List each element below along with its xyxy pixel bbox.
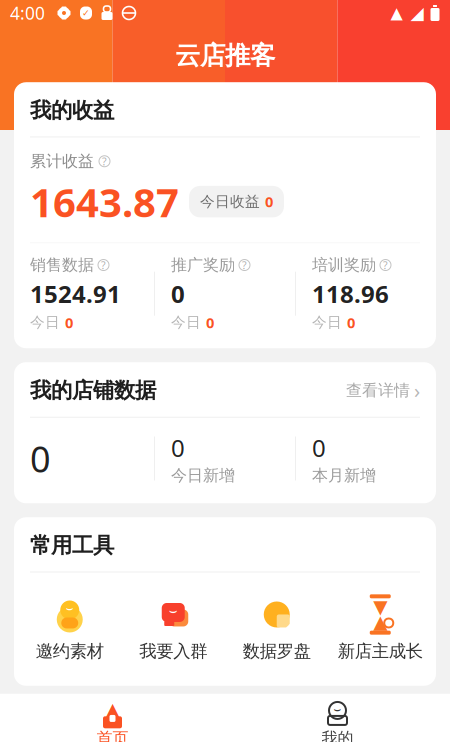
- staticText: 0: [265, 192, 273, 211]
- staticText: 0: [347, 313, 355, 332]
- staticText: 今日收益: [200, 193, 260, 211]
- staticText: 1643.87: [30, 175, 179, 228]
- staticText: 4:00: [10, 1, 45, 24]
- staticText: 云店推客: [175, 40, 275, 71]
- button[interactable]: ⌣: [18, 594, 121, 666]
- staticText: 我的收益: [30, 97, 114, 123]
- staticText: 今日: [312, 313, 342, 331]
- staticText: 今日: [30, 313, 60, 331]
- staticText: ⌣: [66, 603, 74, 614]
- button[interactable]: 数据罗盘: [225, 594, 328, 666]
- staticText: ?: [242, 258, 247, 272]
- staticText: 0: [171, 278, 185, 310]
- button[interactable]: ▼: [328, 594, 432, 666]
- staticText: 今日: [171, 313, 201, 331]
- staticText: ▼: [373, 596, 387, 617]
- staticText: ?: [383, 258, 388, 272]
- staticText: ▲: [105, 699, 120, 721]
- staticText: 0: [65, 313, 73, 332]
- staticText: ›: [414, 377, 420, 404]
- staticText: 本月新增: [312, 466, 376, 485]
- staticText: 我的: [321, 728, 353, 742]
- staticText: 0: [206, 313, 214, 332]
- staticText: 销售数据: [30, 255, 94, 275]
- staticText: ▲: [373, 611, 387, 633]
- staticText: 推广奖励: [171, 255, 235, 275]
- staticText: 我要入群: [139, 640, 207, 662]
- staticText: 培训奖励: [312, 255, 376, 275]
- staticText: ▲: [390, 4, 402, 22]
- staticText: ⌣: [333, 704, 341, 715]
- staticText: ?: [101, 258, 106, 272]
- button[interactable]: ⌣: [225, 695, 450, 742]
- staticText: ⌣: [169, 604, 178, 617]
- staticText: 查看详情: [346, 381, 410, 400]
- staticText: 1524.91: [30, 278, 121, 310]
- button[interactable]: ▲: [0, 695, 225, 742]
- staticText: 累计收益: [30, 151, 94, 171]
- staticText: 数据罗盘: [243, 640, 311, 662]
- staticText: 0: [171, 432, 185, 464]
- staticText: ◢: [410, 3, 423, 23]
- staticText: 今日新增: [171, 466, 235, 485]
- staticText: 邀约素材: [36, 640, 104, 662]
- button[interactable]: ⌣: [121, 594, 225, 666]
- button[interactable]: 查看详情: [346, 377, 420, 404]
- staticText: 首页: [96, 728, 128, 742]
- staticText: ?: [102, 154, 107, 168]
- staticText: 新店主成长: [338, 640, 423, 662]
- staticText: ✓: [82, 8, 90, 18]
- staticText: 0: [30, 435, 51, 482]
- staticText: 0: [312, 432, 326, 464]
- staticText: 常用工具: [30, 532, 114, 558]
- staticText: 118.96: [312, 278, 389, 310]
- staticText: 我的店铺数据: [30, 377, 156, 404]
